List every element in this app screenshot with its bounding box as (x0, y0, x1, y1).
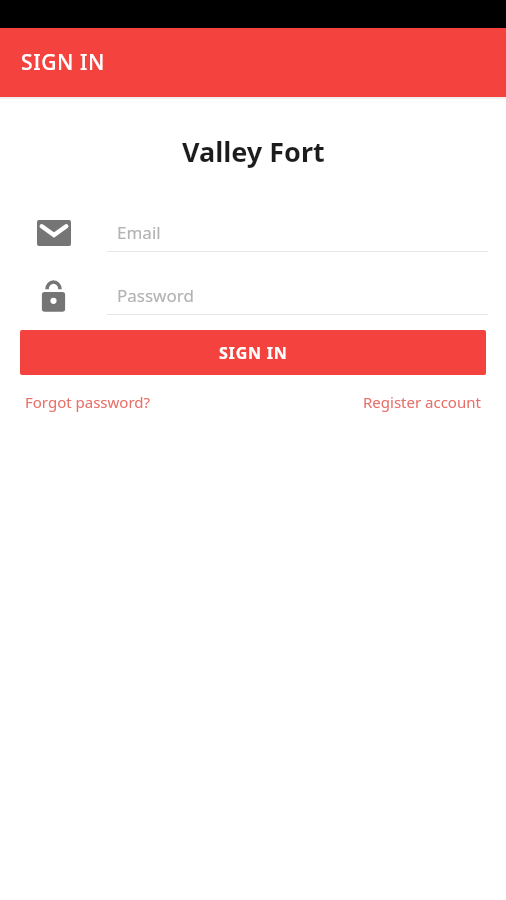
staticText: SIGN IN (21, 48, 105, 77)
button[interactable]: SIGN IN (20, 330, 486, 375)
other: Password (0, 272, 107, 320)
staticText: Password (117, 284, 194, 307)
staticText: Forgot password? (25, 392, 151, 412)
staticText: Email (117, 221, 161, 244)
staticText: Valley Fort (182, 133, 325, 170)
button[interactable]: Email (0, 209, 506, 257)
button[interactable]: Forgot password? (25, 392, 151, 412)
other: Email (0, 209, 107, 257)
staticText: Register account (363, 392, 481, 412)
button[interactable]: Password (0, 272, 506, 320)
staticText: SIGN IN (219, 342, 288, 364)
button[interactable]: Register account (363, 392, 481, 412)
